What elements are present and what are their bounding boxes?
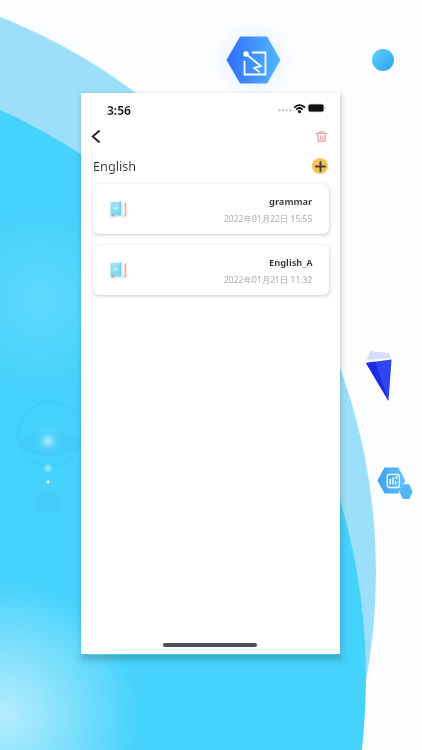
staticText: 2022年01月21日 11:32 <box>224 274 313 286</box>
button[interactable]: Delete <box>308 123 334 149</box>
staticText: English <box>93 157 137 174</box>
button[interactable]: English_A <box>93 245 329 295</box>
button[interactable]: Back <box>82 123 108 149</box>
staticText: 2022年01月22日 15:55 <box>224 213 313 225</box>
staticText: 3:56 <box>107 102 131 118</box>
staticText: English_A <box>269 256 313 269</box>
button[interactable]: grammar <box>93 184 329 234</box>
button[interactable]: Add <box>312 158 328 174</box>
staticText: grammar <box>269 195 313 208</box>
